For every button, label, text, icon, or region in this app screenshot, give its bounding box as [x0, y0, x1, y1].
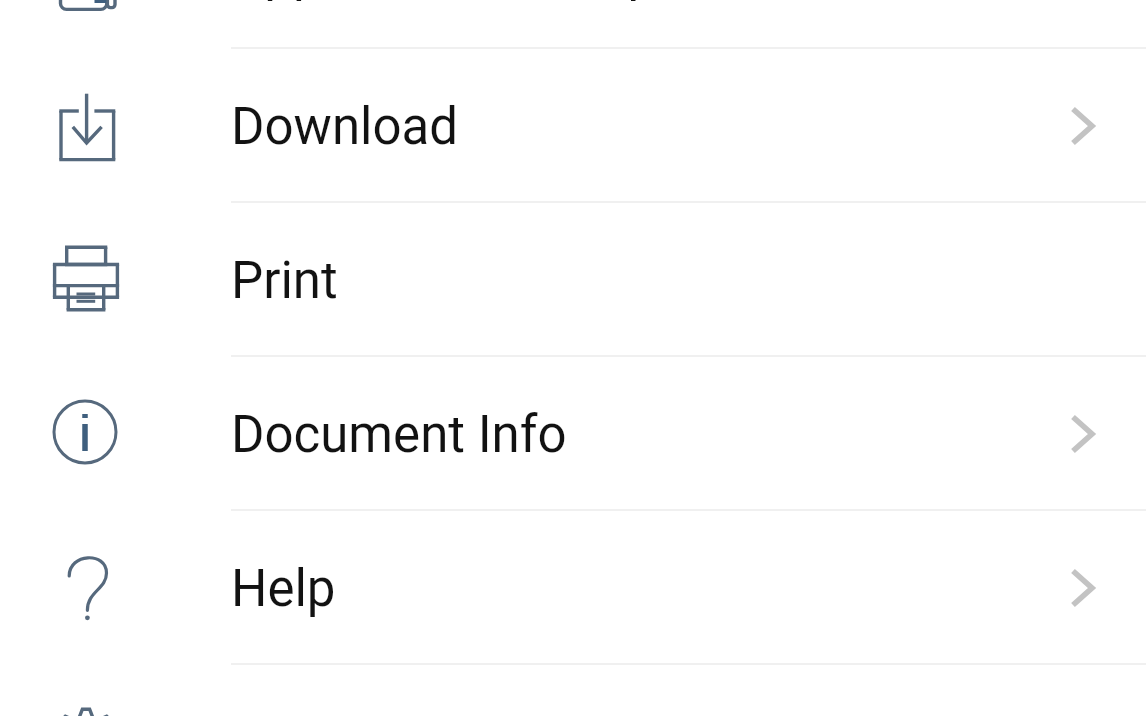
staticText: Download [231, 97, 459, 157]
staticText: Print [231, 251, 338, 311]
button[interactable]: Document Info [0, 357, 1146, 511]
staticText: Document Info [231, 405, 567, 465]
button[interactable]: Open Help [1059, 564, 1107, 612]
button[interactable]: Open Document Info [1059, 410, 1107, 458]
button[interactable]: Download [0, 49, 1146, 203]
button[interactable]: Help [0, 511, 1146, 665]
staticText: Apps and Subscriptions [231, 0, 769, 3]
button[interactable]: Print [0, 203, 1146, 357]
button[interactable]: Apps and Subscriptions [0, 0, 1146, 49]
button[interactable]: Settings [0, 665, 1146, 716]
button[interactable]: Open Download [1059, 102, 1107, 150]
staticText: Help [231, 559, 336, 619]
